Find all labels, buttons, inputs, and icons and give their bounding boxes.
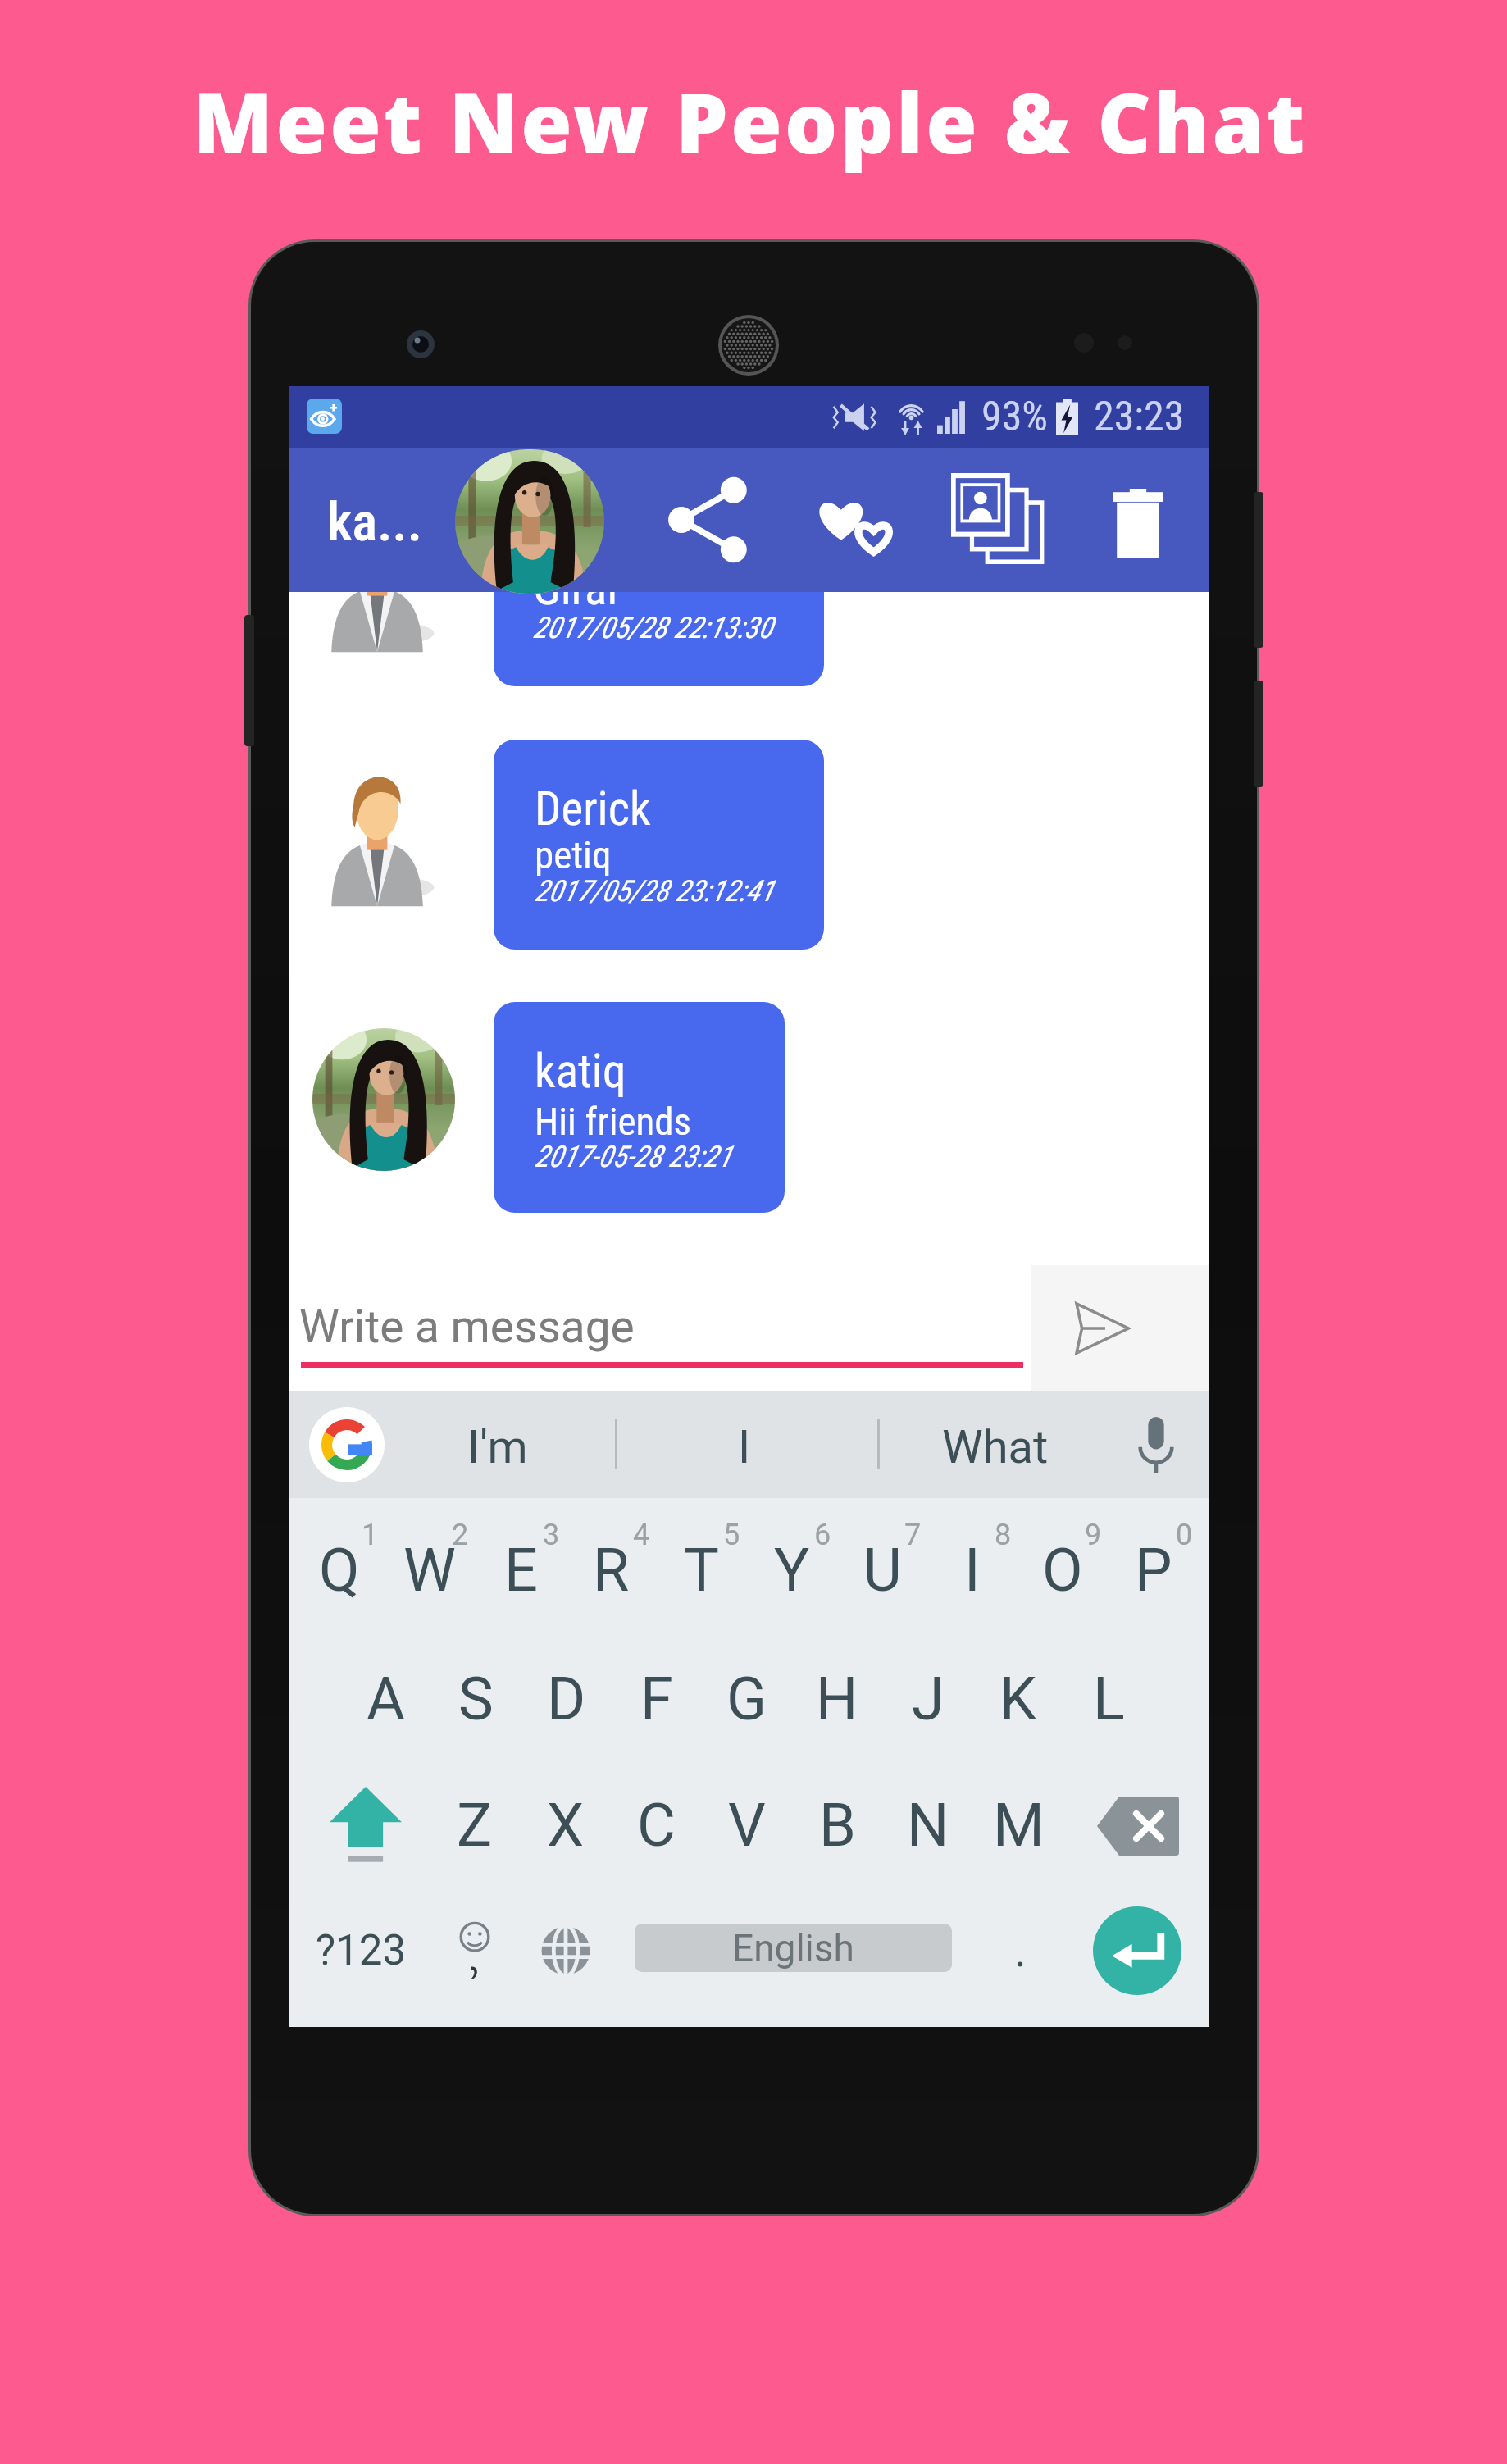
- button[interactable]: P: [1109, 1509, 1199, 1632]
- staticText: S: [458, 1665, 494, 1733]
- button[interactable]: E: [476, 1509, 566, 1632]
- button[interactable]: M: [973, 1764, 1063, 1887]
- button[interactable]: X: [521, 1764, 611, 1887]
- button[interactable]: What: [909, 1393, 1081, 1501]
- staticText: ?123: [316, 1926, 407, 1975]
- button[interactable]: Derick: [494, 740, 824, 950]
- button[interactable]: C: [611, 1764, 701, 1887]
- staticText: What: [942, 1420, 1049, 1474]
- staticText: I'm: [467, 1420, 528, 1474]
- button[interactable]: T: [656, 1509, 746, 1632]
- button[interactable]: N: [883, 1764, 973, 1887]
- staticText: petiq: [535, 832, 612, 877]
- button[interactable]: English: [635, 1924, 952, 1972]
- staticText: katiq: [535, 1044, 626, 1099]
- staticText: Z: [457, 1791, 493, 1860]
- button[interactable]: Y: [747, 1509, 837, 1632]
- button[interactable]: Giral: [494, 592, 824, 686]
- button[interactable]: S: [430, 1637, 521, 1760]
- button[interactable]: I: [927, 1509, 1018, 1632]
- button[interactable]: Emoji: [430, 1893, 520, 2008]
- staticText: I: [738, 1420, 751, 1474]
- staticText: Giral: [533, 592, 618, 616]
- staticText: D: [547, 1665, 586, 1733]
- button[interactable]: I: [658, 1393, 831, 1501]
- staticText: ka...: [327, 491, 423, 553]
- staticText: P: [1135, 1536, 1172, 1605]
- staticText: 9: [1085, 1518, 1102, 1552]
- staticText: 2017-05-28 23:21: [535, 1140, 732, 1174]
- button[interactable]: O: [1018, 1509, 1108, 1632]
- button[interactable]: F: [612, 1637, 702, 1760]
- staticText: 2017/05/28 23:12:41: [535, 874, 775, 909]
- staticText: Derick: [535, 781, 651, 836]
- staticText: M: [993, 1791, 1045, 1860]
- staticText: 7: [904, 1518, 922, 1552]
- staticText: 93%: [981, 393, 1049, 441]
- staticText: 8: [995, 1518, 1012, 1552]
- button[interactable]: Visibility: [307, 399, 342, 434]
- staticText: H: [816, 1665, 858, 1733]
- staticText: F: [640, 1665, 673, 1733]
- button[interactable]: V: [702, 1764, 792, 1887]
- staticText: T: [684, 1536, 719, 1605]
- button[interactable]: Favourites: [791, 448, 909, 592]
- staticText: K: [999, 1665, 1037, 1733]
- staticText: G: [726, 1665, 767, 1733]
- button[interactable]: W: [385, 1509, 475, 1632]
- staticText: J: [912, 1665, 945, 1733]
- button[interactable]: Voice input: [1105, 1391, 1206, 1498]
- button[interactable]: G: [702, 1637, 792, 1760]
- button[interactable]: Delete: [1079, 448, 1197, 592]
- button[interactable]: katiq: [494, 1002, 785, 1213]
- staticText: R: [593, 1536, 630, 1605]
- button[interactable]: Profile photo: [455, 449, 604, 594]
- button[interactable]: Change keyboard language: [521, 1893, 611, 2008]
- staticText: E: [504, 1536, 538, 1605]
- staticText: Y: [774, 1536, 810, 1605]
- button[interactable]: I'm: [412, 1393, 584, 1501]
- button[interactable]: R: [566, 1509, 656, 1632]
- staticText: O: [1042, 1536, 1083, 1605]
- staticText: Q: [319, 1536, 360, 1605]
- button[interactable]: Q: [294, 1509, 385, 1632]
- button[interactable]: Google search: [309, 1407, 385, 1482]
- button[interactable]: .: [975, 1893, 1065, 2008]
- staticText: 6: [814, 1518, 831, 1552]
- button[interactable]: D: [521, 1637, 612, 1760]
- button[interactable]: K: [973, 1637, 1063, 1760]
- staticText: 0: [1176, 1518, 1193, 1552]
- staticText: C: [637, 1791, 676, 1860]
- staticText: V: [728, 1791, 766, 1860]
- staticText: Meet New People & Chat: [193, 65, 1308, 178]
- staticText: N: [907, 1791, 949, 1860]
- button[interactable]: Send: [1031, 1265, 1209, 1391]
- staticText: 23:23: [1094, 393, 1185, 441]
- staticText: 5: [723, 1518, 740, 1552]
- staticText: 4: [633, 1518, 650, 1552]
- staticText: 3: [543, 1518, 560, 1552]
- button[interactable]: Backspace: [1093, 1764, 1183, 1888]
- button[interactable]: A: [340, 1637, 430, 1760]
- staticText: Hii friends: [535, 1099, 692, 1144]
- button[interactable]: Shift: [321, 1764, 411, 1888]
- staticText: A: [367, 1665, 405, 1733]
- button[interactable]: B: [792, 1764, 882, 1887]
- button[interactable]: Photos: [935, 448, 1053, 592]
- staticText: 2: [452, 1518, 469, 1552]
- button[interactable]: L: [1063, 1637, 1154, 1760]
- button[interactable]: Write a message: [301, 1265, 1023, 1391]
- staticText: .: [1014, 1924, 1027, 1978]
- button[interactable]: ?123: [303, 1893, 418, 2008]
- button[interactable]: Z: [430, 1764, 520, 1887]
- staticText: 2017/05/28 22:13:30: [533, 611, 773, 645]
- button[interactable]: U: [837, 1509, 927, 1632]
- button[interactable]: Share: [649, 448, 767, 592]
- staticText: English: [732, 1926, 854, 1970]
- button[interactable]: J: [883, 1637, 973, 1760]
- button[interactable]: H: [792, 1637, 882, 1760]
- staticText: W: [403, 1536, 456, 1605]
- staticText: L: [1093, 1665, 1125, 1733]
- staticText: Write a message: [299, 1300, 635, 1353]
- button[interactable]: Enter: [1093, 1906, 1181, 1995]
